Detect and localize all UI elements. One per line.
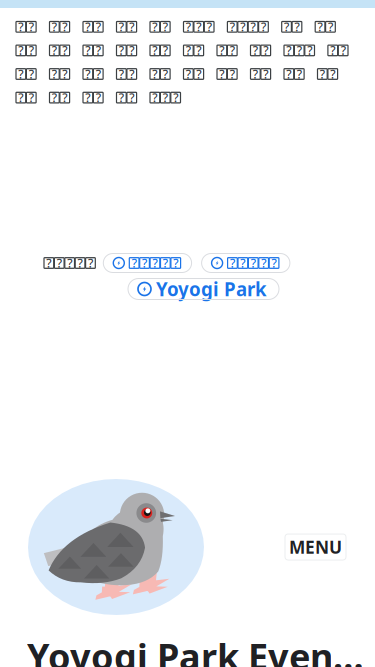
staticText: Yoyogi Park Events on xyxy=(27,632,367,667)
staticText: ? xyxy=(320,66,325,82)
staticText: ? xyxy=(52,90,57,105)
staticText: ? xyxy=(29,90,34,105)
staticText: ? xyxy=(196,42,201,58)
staticText: ? xyxy=(163,42,168,58)
staticText: ? xyxy=(18,66,23,82)
staticText: ? xyxy=(152,42,157,58)
staticText: ? xyxy=(163,255,168,271)
staticText: ? xyxy=(67,255,72,271)
staticText: ? xyxy=(341,42,346,58)
staticText: ? xyxy=(18,42,23,58)
staticText: ? xyxy=(272,255,277,271)
staticText: ? xyxy=(129,19,134,35)
staticText: ? xyxy=(307,42,312,58)
staticText: ? xyxy=(85,19,90,35)
staticText: ? xyxy=(240,19,245,35)
staticText: ? xyxy=(132,255,137,271)
staticText: ? xyxy=(77,255,82,271)
staticText: ? xyxy=(119,66,124,82)
staticText: ? xyxy=(286,42,291,58)
staticText: ? xyxy=(18,90,23,105)
staticText: ? xyxy=(85,42,90,58)
staticText: ? xyxy=(18,19,23,35)
button[interactable]: Yoyogi Park xyxy=(128,278,279,299)
staticText: ? xyxy=(219,42,224,58)
staticText: ? xyxy=(297,42,302,58)
button[interactable]: MENU xyxy=(285,534,346,560)
staticText: ? xyxy=(152,90,157,105)
staticText: ? xyxy=(330,66,335,82)
staticText: ? xyxy=(250,19,255,35)
staticText: ? xyxy=(96,42,101,58)
staticText: ? xyxy=(62,66,67,82)
staticText: ? xyxy=(261,19,266,35)
staticText: ? xyxy=(96,90,101,105)
staticText: ? xyxy=(230,42,235,58)
staticText: ? xyxy=(230,255,235,271)
staticText: ? xyxy=(240,255,245,271)
button[interactable]: Suggestion xyxy=(103,253,192,272)
staticText: ? xyxy=(129,66,134,82)
staticText: ? xyxy=(186,19,191,35)
staticText: ? xyxy=(253,42,258,58)
staticText: ? xyxy=(230,19,235,35)
staticText: ? xyxy=(57,255,62,271)
staticText: ? xyxy=(85,66,90,82)
staticText: ? xyxy=(46,255,51,271)
staticText: ? xyxy=(196,19,201,35)
staticText: ? xyxy=(163,19,168,35)
staticText: ? xyxy=(186,66,191,82)
staticText: ? xyxy=(152,19,157,35)
staticText: ? xyxy=(142,255,147,271)
staticText: ? xyxy=(88,255,93,271)
staticText: ? xyxy=(119,19,124,35)
staticText: ? xyxy=(230,66,235,82)
staticText: ? xyxy=(52,42,57,58)
staticText: ? xyxy=(163,66,168,82)
staticText: ? xyxy=(263,42,268,58)
staticText: ? xyxy=(62,42,67,58)
staticText: ? xyxy=(62,90,67,105)
staticText: Yoyogi Park xyxy=(156,277,267,301)
staticText: ? xyxy=(186,42,191,58)
staticText: ? xyxy=(251,255,256,271)
staticText: ? xyxy=(330,42,335,58)
staticText: ? xyxy=(52,66,57,82)
staticText: ? xyxy=(29,42,34,58)
staticText: ? xyxy=(173,255,178,271)
staticText: ? xyxy=(29,19,34,35)
staticText: ? xyxy=(163,90,168,105)
staticText: ? xyxy=(253,66,258,82)
staticText: ? xyxy=(96,66,101,82)
staticText: ? xyxy=(52,19,57,35)
staticText: ? xyxy=(284,19,289,35)
staticText: ? xyxy=(294,19,299,35)
staticText: ? xyxy=(328,19,333,35)
staticText: ? xyxy=(119,90,124,105)
button[interactable]: Suggestion xyxy=(202,253,290,272)
staticText: ? xyxy=(207,19,212,35)
staticText: ? xyxy=(297,66,302,82)
staticText: ? xyxy=(119,42,124,58)
staticText: ? xyxy=(129,90,134,105)
staticText: ? xyxy=(196,66,201,82)
staticText: ? xyxy=(286,66,291,82)
staticText: ? xyxy=(29,66,34,82)
staticText: ? xyxy=(318,19,323,35)
staticText: ? xyxy=(129,42,134,58)
staticText: MENU xyxy=(289,535,342,558)
staticText: ? xyxy=(173,90,178,105)
staticText: ? xyxy=(152,66,157,82)
staticText: ? xyxy=(96,19,101,35)
staticText: ? xyxy=(219,66,224,82)
staticText: ? xyxy=(261,255,266,271)
staticText: ? xyxy=(152,255,157,271)
staticText: ? xyxy=(62,19,67,35)
staticText: ? xyxy=(85,90,90,105)
staticText: ? xyxy=(263,66,268,82)
